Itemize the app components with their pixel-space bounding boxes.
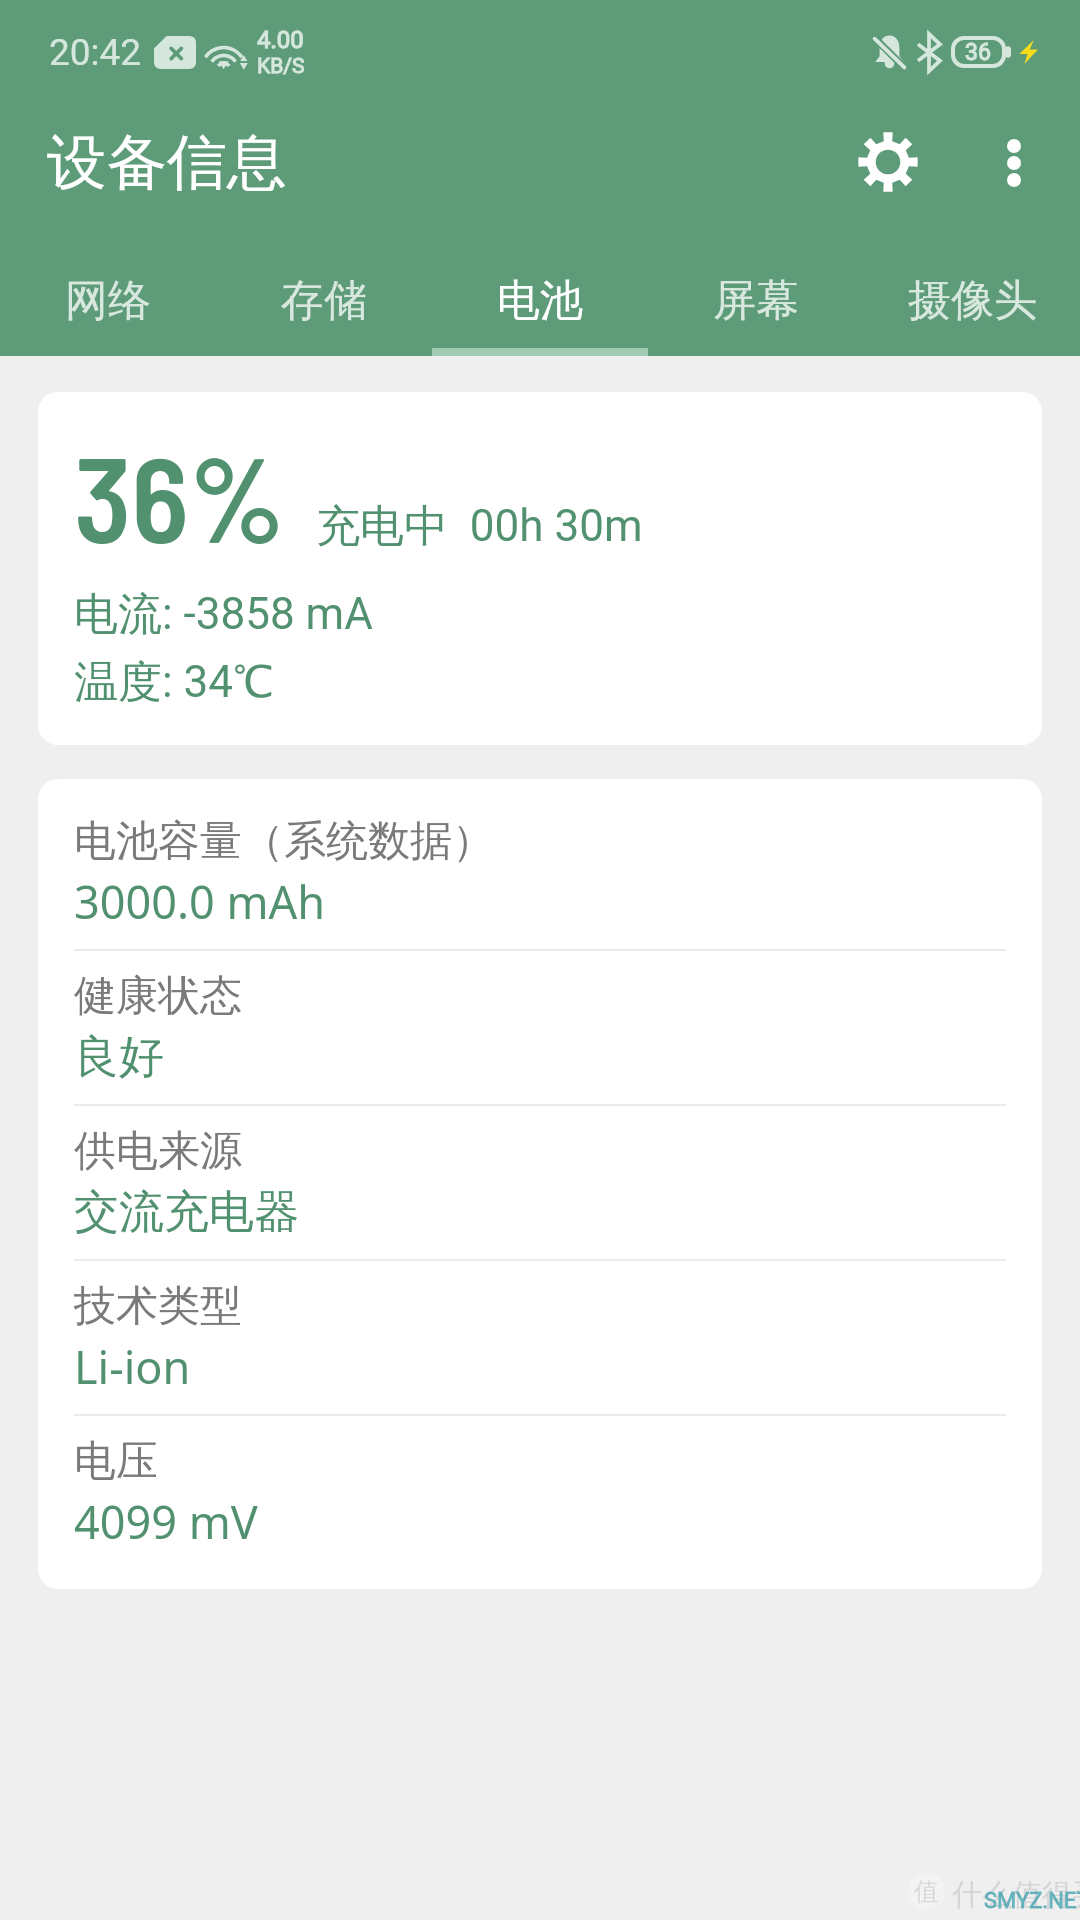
staticText: 设备信息 bbox=[47, 125, 287, 201]
staticText: 温度: 34℃ bbox=[74, 655, 274, 710]
staticText: 20:42 bbox=[49, 31, 142, 74]
staticText: 屏幕 bbox=[713, 274, 799, 328]
staticText: 存储 bbox=[281, 274, 367, 328]
button[interactable]: 电压 bbox=[38, 1416, 1042, 1569]
button[interactable]: More options bbox=[959, 108, 1069, 218]
staticText: 交流充电器 bbox=[74, 1184, 299, 1241]
staticText: 良好 bbox=[74, 1029, 164, 1086]
staticText: 供电来源 bbox=[74, 1125, 242, 1178]
staticText: 3000.0 mAh bbox=[74, 874, 326, 931]
staticText: 4099 mV bbox=[74, 1494, 258, 1551]
staticText: 什么值得买 bbox=[952, 1876, 1080, 1914]
staticText: 值 bbox=[914, 1876, 939, 1907]
button[interactable]: 电池 bbox=[432, 252, 648, 356]
staticText: 网络 bbox=[65, 274, 151, 328]
staticText: 技术类型 bbox=[74, 1280, 242, 1333]
staticText: 36% bbox=[74, 423, 286, 567]
staticText: 电池 bbox=[497, 274, 583, 328]
staticText: 健康状态 bbox=[74, 970, 242, 1023]
button[interactable]: 健康状态 bbox=[38, 951, 1042, 1104]
staticText: 4.00 bbox=[257, 26, 304, 54]
button[interactable]: 屏幕 bbox=[648, 252, 864, 356]
button[interactable]: 供电来源 bbox=[38, 1106, 1042, 1259]
staticText: 电压 bbox=[74, 1435, 158, 1488]
button[interactable]: 存储 bbox=[216, 252, 432, 356]
button[interactable]: 摄像头 bbox=[864, 252, 1080, 356]
staticText: 电流: -3858 mA bbox=[74, 587, 373, 642]
button[interactable]: Settings bbox=[833, 107, 943, 217]
staticText: 36 bbox=[965, 39, 991, 66]
staticText: 电池容量（系统数据） bbox=[74, 815, 494, 868]
staticText: SMYZ.NET bbox=[984, 1888, 1080, 1914]
staticText: KB/S bbox=[257, 54, 305, 79]
button[interactable]: 网络 bbox=[0, 252, 216, 356]
staticText: Li-ion bbox=[74, 1339, 191, 1396]
button[interactable]: 电池容量（系统数据） bbox=[38, 796, 1042, 949]
button[interactable]: 技术类型 bbox=[38, 1261, 1042, 1414]
staticText: 摄像头 bbox=[908, 274, 1037, 328]
staticText: 充电中 00h 30m bbox=[316, 499, 643, 554]
